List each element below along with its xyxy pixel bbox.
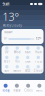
button[interactable]: Rain — [22, 45, 33, 55]
button[interactable]: Moon — [12, 64, 22, 73]
button[interactable]: More — [34, 80, 45, 96]
button[interactable]: Feel — [1, 55, 12, 64]
staticText: Wind — [14, 50, 21, 54]
button[interactable]: Wind — [12, 45, 22, 55]
staticText: Radar — [13, 89, 20, 92]
button[interactable]: Press — [33, 55, 43, 64]
button[interactable]: Sun — [1, 64, 12, 73]
staticText: 17° — [36, 37, 41, 41]
staticText: AQI — [25, 69, 30, 72]
button[interactable]: Cities — [22, 80, 34, 96]
staticText: Feel — [4, 60, 10, 63]
button[interactable]: Cloud — [33, 64, 43, 73]
staticText: Cloud — [34, 69, 43, 72]
button[interactable]: Today — [0, 80, 11, 96]
button[interactable]: Dew — [22, 55, 33, 64]
staticText: UV — [5, 50, 9, 54]
staticText: Today — [2, 89, 9, 92]
staticText: 9° — [4, 37, 7, 41]
staticText: Rain — [25, 50, 31, 54]
staticText: Mostly Cloudy — [2, 24, 21, 27]
staticText: TODAY — [4, 30, 13, 34]
button[interactable]: AQI — [22, 64, 33, 73]
staticText: Dew — [25, 60, 30, 63]
staticText: Hum — [35, 50, 41, 54]
button[interactable]: UV — [1, 45, 12, 55]
staticText: More — [36, 89, 43, 92]
staticText: Vis — [15, 60, 19, 63]
staticText: Sun — [4, 69, 9, 72]
button[interactable]: TODAY — [1, 29, 43, 44]
staticText: Cities — [24, 89, 32, 92]
button[interactable]: Radar — [11, 80, 22, 96]
staticText: Press — [35, 60, 42, 63]
staticText: 13° — [2, 10, 19, 24]
staticText: Moon — [13, 69, 21, 72]
staticText: 9:41 — [2, 1, 9, 7]
button[interactable]: Vis — [12, 55, 22, 64]
button[interactable]: Hum — [33, 45, 43, 55]
